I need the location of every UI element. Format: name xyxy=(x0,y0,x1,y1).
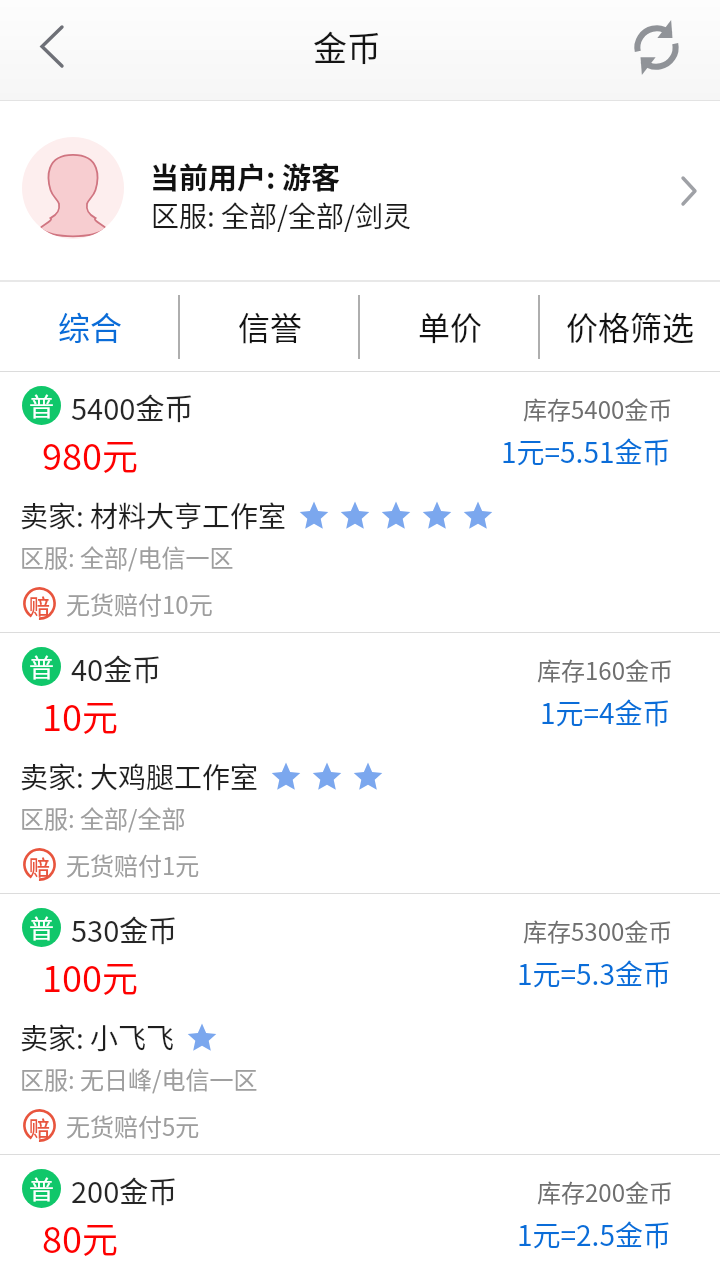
staticText: 无货赔付10元 xyxy=(66,586,213,621)
staticText: 普 xyxy=(29,648,55,684)
staticText: 赔 xyxy=(29,851,50,881)
staticText: 200金币 xyxy=(71,1169,178,1211)
button[interactable]: 价格筛选 xyxy=(540,282,720,372)
staticText: 无货赔付5元 xyxy=(66,1108,200,1143)
button[interactable]: Back xyxy=(0,0,106,100)
staticText: 区服: 全部/电信一区 xyxy=(20,539,234,574)
button[interactable]: 综合 xyxy=(0,282,180,372)
button[interactable]: 普 xyxy=(0,894,720,1154)
staticText: 10元 xyxy=(42,689,118,741)
staticText: 库存5300金币 xyxy=(523,913,673,948)
button[interactable]: 信誉 xyxy=(180,282,360,372)
staticText: 单价 xyxy=(418,303,483,349)
button[interactable]: Refresh xyxy=(610,0,720,100)
button[interactable]: 当前用户: 游客 xyxy=(0,101,720,280)
staticText: 库存5400金币 xyxy=(523,391,673,426)
staticText: 赔 xyxy=(29,590,50,620)
staticText: 库存160金币 xyxy=(537,652,673,687)
staticText: 卖家: 大鸡腿工作室 xyxy=(20,756,259,797)
button[interactable]: 普 xyxy=(0,633,720,893)
staticText: 综合 xyxy=(58,303,123,349)
staticText: 区服: 全部/全部 xyxy=(20,800,186,835)
staticText: 980元 xyxy=(42,428,138,480)
staticText: 信誉 xyxy=(238,303,303,349)
staticText: 金币 xyxy=(313,22,381,71)
staticText: 价格筛选 xyxy=(566,303,695,349)
staticText: 普 xyxy=(29,1170,55,1206)
staticText: 区服: 全部/全部/剑灵 xyxy=(151,195,412,236)
staticText: 普 xyxy=(29,909,55,945)
button[interactable]: 普 xyxy=(0,1155,720,1280)
staticText: 5400金币 xyxy=(71,386,194,428)
staticText: 库存200金币 xyxy=(537,1174,673,1209)
staticText: 1元=5.3金币 xyxy=(517,953,671,994)
staticText: 530金币 xyxy=(71,908,178,950)
button[interactable]: 普 xyxy=(0,372,720,632)
staticText: 卖家: 材料大亨工作室 xyxy=(20,495,287,536)
staticText: 1元=5.51金币 xyxy=(501,431,671,472)
staticText: 赔 xyxy=(29,1112,50,1142)
staticText: 卖家: 小飞飞 xyxy=(20,1017,175,1058)
button[interactable]: 单价 xyxy=(360,282,540,372)
staticText: 1元=4金币 xyxy=(540,692,671,733)
staticText: 当前用户: 游客 xyxy=(150,155,341,197)
staticText: 无货赔付1元 xyxy=(66,847,200,882)
staticText: 普 xyxy=(29,387,55,423)
staticText: 40金币 xyxy=(71,647,162,689)
staticText: 区服: 无日峰/电信一区 xyxy=(20,1061,258,1096)
staticText: 1元=2.5金币 xyxy=(517,1214,671,1255)
staticText: 100元 xyxy=(42,950,138,1002)
staticText: 80元 xyxy=(42,1211,118,1263)
